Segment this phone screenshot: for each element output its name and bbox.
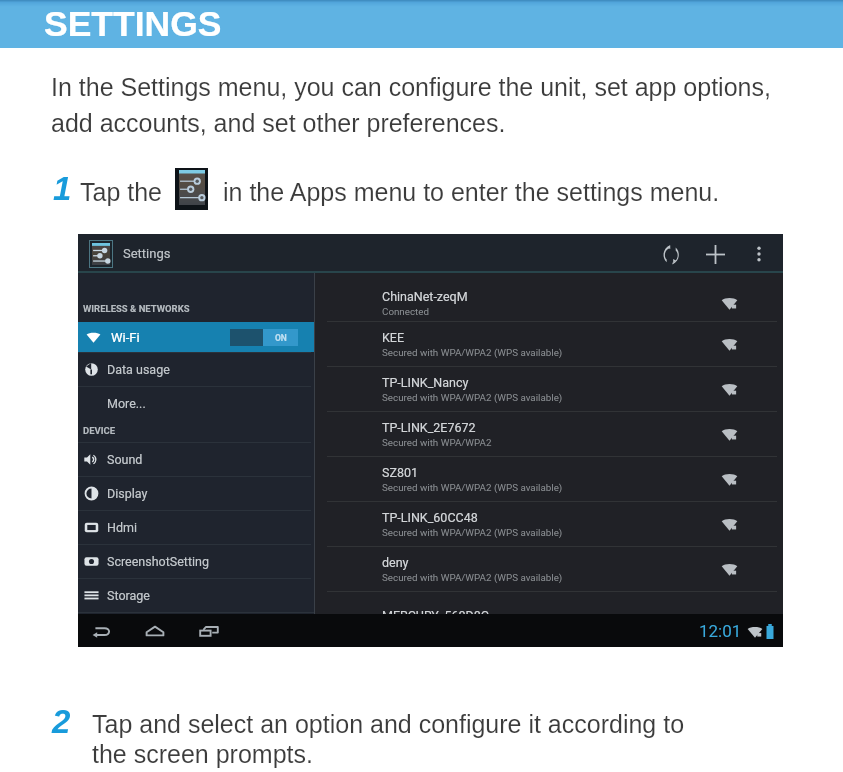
button[interactable]: ScreenshotSetting bbox=[78, 545, 314, 578]
staticText: Display bbox=[107, 486, 148, 501]
staticText: Storage bbox=[107, 588, 150, 603]
staticText: in the Apps menu to enter the settings m… bbox=[223, 178, 720, 206]
staticText: Secured with WPA/WPA2 (WPS available) bbox=[382, 347, 563, 358]
staticText: the screen prompts. bbox=[92, 740, 313, 768]
button[interactable]: KEE bbox=[315, 322, 783, 366]
staticText: SZ801 bbox=[382, 465, 418, 480]
button[interactable]: Display bbox=[78, 477, 314, 510]
staticText: Wi-Fi bbox=[111, 330, 140, 345]
button[interactable]: TP-LINK_2E7672 bbox=[315, 412, 783, 456]
button[interactable]: Scan for networks bbox=[655, 238, 687, 270]
staticText: KEE bbox=[382, 330, 405, 345]
button[interactable]: Recent apps bbox=[192, 614, 226, 647]
button[interactable]: ChinaNet-zeqM bbox=[315, 273, 783, 321]
staticText: Secured with WPA/WPA2 (WPS available) bbox=[382, 527, 563, 538]
button[interactable]: Wi-Fi bbox=[78, 322, 314, 352]
button[interactable]: Sound bbox=[78, 443, 314, 476]
staticText: ChinaNet-zeqM bbox=[382, 289, 468, 304]
staticText: WIRELESS & NETWORKS bbox=[83, 303, 190, 314]
staticText: Data usage bbox=[107, 362, 170, 377]
staticText: ScreenshotSetting bbox=[107, 554, 209, 569]
staticText: Secured with WPA/WPA2 (WPS available) bbox=[382, 392, 563, 403]
staticText: Settings bbox=[123, 246, 171, 261]
button[interactable]: More options bbox=[743, 238, 775, 270]
staticText: Tap and select an option and configure i… bbox=[92, 710, 685, 738]
staticText: Secured with WPA/WPA2 (WPS available) bbox=[382, 482, 563, 493]
button[interactable]: TP-LINK_Nancy bbox=[315, 367, 783, 411]
button[interactable]: SZ801 bbox=[315, 457, 783, 501]
button[interactable]: deny bbox=[315, 547, 783, 591]
staticText: Secured with WPA/WPA2 bbox=[382, 437, 492, 448]
staticText: Connected bbox=[382, 306, 430, 317]
button[interactable]: More... bbox=[78, 387, 314, 420]
staticText: MERCURY_560D8C bbox=[382, 608, 489, 614]
button[interactable]: Home bbox=[138, 614, 172, 647]
button[interactable]: Data usage bbox=[78, 353, 314, 386]
button[interactable]: Storage bbox=[78, 579, 314, 612]
staticText: deny bbox=[382, 555, 409, 570]
staticText: 1 bbox=[53, 170, 72, 207]
staticText: More... bbox=[107, 396, 146, 411]
staticText: TP-LINK_2E7672 bbox=[382, 420, 476, 435]
staticText: SETTINGS bbox=[44, 4, 222, 44]
button[interactable]: Hdmi bbox=[78, 511, 314, 544]
staticText: Hdmi bbox=[107, 520, 137, 535]
staticText: In the Settings menu, you can configure … bbox=[51, 73, 771, 101]
staticText: ON bbox=[275, 333, 287, 343]
staticText: Tap the bbox=[80, 178, 163, 206]
button[interactable]: TP-LINK_60CC48 bbox=[315, 502, 783, 546]
staticText: 2 bbox=[52, 703, 71, 740]
staticText: 12:01 bbox=[699, 621, 742, 641]
staticText: add accounts, and set other preferences. bbox=[51, 109, 506, 137]
staticText: TP-LINK_Nancy bbox=[382, 375, 469, 390]
staticText: Secured with WPA/WPA2 (WPS available) bbox=[382, 572, 563, 583]
other: Settings app icon bbox=[179, 170, 205, 205]
button[interactable]: Add network bbox=[699, 238, 731, 270]
staticText: Sound bbox=[107, 452, 143, 467]
staticText: TP-LINK_60CC48 bbox=[382, 510, 478, 525]
staticText: DEVICE bbox=[83, 425, 116, 436]
button[interactable]: Back bbox=[84, 614, 118, 647]
